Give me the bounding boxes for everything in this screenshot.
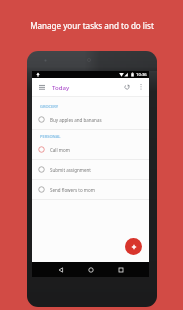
button[interactable]: Send flowers to mom (32, 180, 149, 200)
button[interactable]: Add task (125, 238, 142, 255)
staticText: Buy apples and bananas (50, 117, 102, 123)
staticText: GROCERY (40, 104, 59, 109)
button[interactable]: More options (136, 82, 146, 92)
button[interactable]: Buy apples and bananas (32, 110, 149, 130)
button[interactable]: Submit assignment (32, 160, 149, 180)
staticText: Call mom (50, 147, 70, 153)
staticText: PERSONAL (40, 134, 61, 139)
button[interactable]: Back (55, 264, 66, 275)
button[interactable]: Call mom (32, 140, 149, 160)
button[interactable]: Refresh (122, 82, 132, 92)
button[interactable]: Home (85, 264, 96, 275)
staticText: Send flowers to mom (50, 187, 95, 193)
staticText: Submit assignment (50, 167, 91, 173)
staticText: Manage your tasks and to do list (30, 20, 154, 31)
staticText: 10:36 (136, 72, 147, 77)
button[interactable]: Recent apps (115, 264, 126, 275)
button[interactable]: Open navigation menu (36, 82, 45, 91)
staticText: Today (52, 83, 70, 91)
